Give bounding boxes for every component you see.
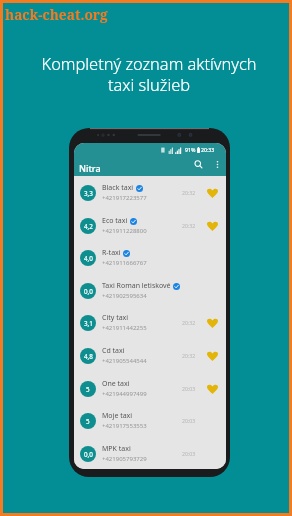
staticText: One taxi — [102, 379, 130, 389]
button[interactable]: Favourite — [205, 219, 219, 233]
staticText: Taxi Roman letiskové — [102, 281, 171, 291]
staticText: +421944997499 — [102, 390, 147, 398]
staticText: 3,3 — [84, 189, 93, 198]
button[interactable]: 4,8 — [74, 339, 226, 372]
staticText: R-taxi — [102, 248, 121, 258]
staticText: 20:03 — [182, 385, 196, 392]
staticText: 20:32 — [182, 222, 196, 229]
staticText: +421911228800 — [102, 227, 147, 235]
staticText: Moje taxi — [102, 411, 133, 421]
staticText: +421905793729 — [102, 455, 147, 463]
staticText: Black taxi — [102, 183, 134, 193]
staticText: 20:32 — [182, 352, 196, 359]
staticText: 20:32 — [182, 189, 196, 196]
button[interactable]: 4,2 — [74, 209, 226, 242]
button[interactable]: 5 — [74, 372, 226, 405]
staticText: MPK taxi — [102, 444, 131, 454]
staticText: City taxi — [102, 313, 129, 323]
staticText: 4,0 — [84, 254, 93, 263]
staticText: 0,0 — [84, 450, 93, 459]
staticText: 5 — [86, 385, 90, 394]
staticText: Eco taxi — [102, 216, 128, 226]
staticText: Cd taxi — [102, 346, 125, 356]
button[interactable]: 3,1 — [74, 306, 226, 339]
staticText: 20:03 — [182, 417, 196, 424]
staticText: 20:03 — [182, 450, 196, 457]
button[interactable]: 5 — [74, 404, 226, 437]
button[interactable]: More options — [210, 157, 224, 171]
staticText: +421917553553 — [102, 422, 147, 430]
button[interactable]: 4,0 — [74, 241, 226, 274]
button[interactable]: Favourite — [205, 382, 219, 396]
staticText: +421905544544 — [102, 357, 147, 365]
button[interactable]: Favourite — [205, 186, 219, 200]
staticText: Nitra — [79, 162, 101, 174]
staticText: hack-cheat.org — [5, 5, 108, 24]
staticText: Kompletný zoznam aktívnych taxi služieb — [3, 52, 292, 96]
staticText: 5 — [86, 417, 90, 426]
button[interactable]: 0,0 — [74, 437, 226, 469]
button[interactable]: 0,0 — [74, 274, 226, 307]
staticText: +421917223577 — [102, 194, 147, 202]
staticText: 20:32 — [182, 319, 196, 326]
staticText: +421911442255 — [102, 324, 147, 332]
staticText: 3,1 — [84, 319, 93, 328]
staticText: 4,2 — [84, 222, 93, 231]
staticText: 91% — [185, 146, 196, 153]
button[interactable]: Favourite — [205, 316, 219, 330]
button[interactable]: 3,3 — [74, 176, 226, 209]
button[interactable]: Search — [191, 157, 205, 171]
button[interactable]: Favourite — [205, 349, 219, 363]
staticText: 0,0 — [84, 287, 93, 296]
staticText: 20:33 — [201, 146, 215, 153]
staticText: +421911666767 — [102, 259, 147, 267]
staticText: +421902595634 — [102, 292, 147, 300]
staticText: 4,8 — [84, 352, 93, 361]
